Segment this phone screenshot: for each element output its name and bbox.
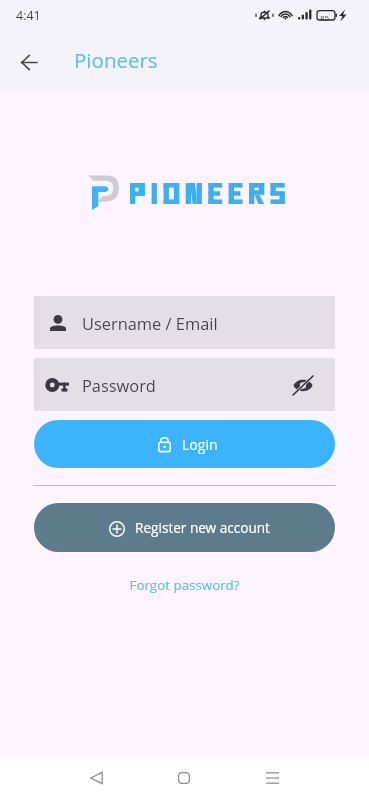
button[interactable]: Username / Email xyxy=(34,296,335,349)
staticText: Login xyxy=(182,435,218,454)
button[interactable]: Back xyxy=(72,755,120,800)
staticText: 85 xyxy=(320,12,330,23)
staticText: 4:41 xyxy=(16,7,41,24)
button[interactable]: Show password xyxy=(283,365,323,405)
staticText: Password xyxy=(82,374,156,396)
button[interactable]: Forgot password? xyxy=(0,576,369,594)
staticText: Pioneers xyxy=(74,46,158,74)
button[interactable]: Password xyxy=(34,358,335,411)
staticText: Register new account xyxy=(135,518,270,537)
staticText: Username / Email xyxy=(82,312,218,334)
button[interactable]: Recent apps xyxy=(248,755,296,800)
button[interactable]: Register new account xyxy=(34,503,335,552)
button[interactable]: Login xyxy=(34,420,335,468)
button[interactable]: Back xyxy=(7,41,50,84)
button[interactable]: Home xyxy=(160,755,208,800)
